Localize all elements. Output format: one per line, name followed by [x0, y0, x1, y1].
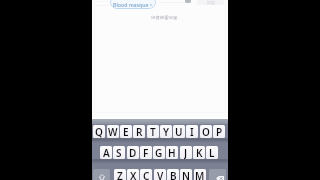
button[interactable]: O — [200, 125, 212, 138]
staticText: W — [108, 125, 118, 138]
button[interactable]: S — [113, 146, 125, 159]
staticText: H — [168, 146, 176, 159]
staticText: D — [129, 146, 137, 159]
staticText: P — [216, 125, 223, 138]
button[interactable]: J — [180, 146, 192, 159]
staticText: 搜索 — [207, 0, 215, 5]
button[interactable]: L — [206, 146, 218, 159]
button[interactable]: H — [166, 146, 178, 159]
staticText: L — [209, 146, 215, 159]
button[interactable]: X — [127, 169, 139, 180]
staticText: J — [184, 146, 188, 159]
staticText: G — [155, 146, 163, 159]
button[interactable]: Y — [160, 125, 172, 138]
button[interactable]: C — [140, 169, 152, 180]
button[interactable]: B — [167, 169, 179, 180]
button[interactable]: N — [180, 169, 192, 180]
staticText: C — [143, 169, 150, 180]
button[interactable]: P — [213, 125, 225, 138]
staticText: × — [150, 2, 153, 8]
button[interactable]: 搜索 — [197, 0, 224, 5]
staticText: X — [130, 169, 137, 180]
staticText: U — [175, 125, 183, 138]
button[interactable]: A — [100, 146, 112, 159]
staticText: B — [170, 169, 177, 180]
staticText: K — [196, 146, 203, 159]
button[interactable]: Blood masque — [110, 0, 156, 9]
staticText: R — [136, 125, 143, 138]
staticText: T — [150, 125, 156, 138]
button[interactable]: W — [107, 125, 119, 138]
button[interactable]: R — [133, 125, 145, 138]
button[interactable]: G — [153, 146, 165, 159]
staticText: Z — [117, 169, 123, 180]
button[interactable]: Z — [114, 169, 126, 180]
button[interactable]: U — [173, 125, 185, 138]
staticText: E — [123, 125, 129, 138]
button[interactable]: M — [194, 169, 206, 180]
button[interactable]: K — [193, 146, 205, 159]
staticText: M — [195, 169, 205, 180]
button[interactable]: E — [120, 125, 132, 138]
button[interactable]: Backspace — [209, 169, 226, 180]
button[interactable]: V — [154, 169, 166, 180]
staticText: 没有搜索记录 — [151, 15, 178, 21]
staticText: I — [190, 125, 194, 138]
button[interactable]: Q — [93, 125, 105, 138]
staticText: N — [182, 169, 190, 180]
staticText: S — [116, 146, 122, 159]
button[interactable]: T — [147, 125, 159, 138]
staticText: O — [202, 125, 210, 138]
staticText: Y — [163, 125, 170, 138]
button[interactable]: Shift — [93, 169, 110, 180]
button[interactable]: D — [127, 146, 139, 159]
staticText: Q — [95, 125, 103, 138]
staticText: V — [157, 169, 164, 180]
staticText: F — [143, 146, 149, 159]
button[interactable]: F — [140, 146, 152, 159]
staticText: A — [103, 146, 110, 159]
staticText: Blood masque — [113, 1, 149, 8]
button[interactable]: I — [186, 125, 198, 138]
